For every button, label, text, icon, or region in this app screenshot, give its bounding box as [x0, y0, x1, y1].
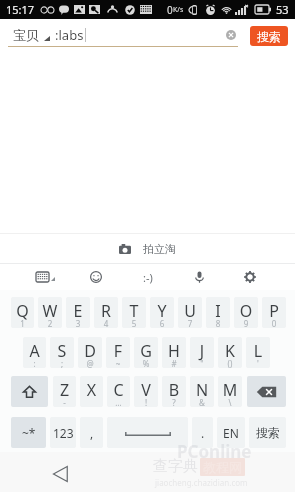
button[interactable]: Keyboard layout [28, 264, 62, 290]
button[interactable]: Space [107, 417, 188, 448]
staticText: 53 [276, 2, 289, 17]
staticText: # [162, 358, 186, 368]
staticText: N [190, 379, 214, 401]
staticText: U [178, 300, 202, 322]
staticText: … [107, 397, 130, 407]
staticText: G [134, 340, 158, 362]
button[interactable]: Settings [233, 264, 267, 290]
button[interactable]: H [162, 337, 186, 368]
staticText: . [201, 425, 205, 441]
staticText: 3 [66, 318, 90, 328]
button[interactable]: Voice input [182, 264, 216, 290]
button[interactable]: 搜索 [249, 417, 286, 448]
button[interactable]: I [206, 297, 230, 328]
button[interactable]: C [107, 376, 130, 407]
staticText: C [107, 379, 130, 401]
button[interactable]: 拍立淘 [0, 234, 295, 263]
staticText: 1 [11, 318, 34, 328]
staticText: O [234, 300, 258, 322]
staticText: % [134, 358, 158, 368]
button[interactable]: T [122, 297, 146, 328]
button[interactable]: V [134, 376, 158, 407]
button[interactable]: EN [217, 417, 245, 448]
button[interactable]: D [78, 337, 102, 368]
button[interactable]: , [80, 417, 103, 448]
button[interactable]: Emoticon [131, 264, 165, 290]
button[interactable]: Y [150, 297, 174, 328]
button[interactable]: 123 [50, 417, 76, 448]
button[interactable]: Q [11, 297, 34, 328]
staticText: X [80, 379, 103, 401]
button[interactable]: Emoji [79, 264, 113, 290]
button[interactable]: Shift [11, 376, 48, 407]
button[interactable]: M [218, 376, 242, 407]
staticText: 拍立淘 [143, 242, 176, 256]
staticText: ~ [106, 358, 130, 368]
button[interactable]: W [38, 297, 62, 328]
staticText: D [78, 340, 102, 362]
staticText: ~* [22, 425, 36, 441]
button[interactable]: P [262, 297, 286, 328]
staticText: ' [246, 358, 270, 368]
button[interactable]: E [66, 297, 90, 328]
staticText: \ [218, 397, 242, 407]
button[interactable]: . [192, 417, 213, 448]
button[interactable]: O [234, 297, 258, 328]
staticText: :labs [55, 26, 84, 44]
staticText: PConline [177, 440, 252, 463]
staticText: ? [162, 397, 186, 407]
staticText: 查字典 [153, 457, 198, 476]
button[interactable]: Clear text [226, 30, 236, 40]
button[interactable]: S [50, 337, 74, 368]
staticText: 搜索 [257, 29, 281, 44]
staticText: 0 [167, 3, 173, 17]
staticText: Y [150, 300, 174, 322]
staticText: 搜索 [256, 425, 280, 440]
staticText: & [190, 397, 214, 407]
staticText: M [218, 379, 242, 401]
staticText: E [66, 300, 90, 322]
button[interactable]: 宝贝 [8, 23, 238, 47]
staticText: A [23, 340, 46, 362]
staticText: I [206, 300, 230, 322]
staticText: 7 [178, 318, 202, 328]
button[interactable]: 搜索 [250, 26, 288, 46]
staticText: 0 [262, 318, 286, 328]
staticText: T [122, 300, 146, 322]
button[interactable]: G [134, 337, 158, 368]
staticText: J [190, 340, 214, 362]
staticText: 4 [94, 318, 118, 328]
staticText: V [134, 379, 158, 401]
staticText: L [246, 340, 270, 362]
button[interactable]: ~* [11, 417, 46, 448]
button[interactable]: A [23, 337, 46, 368]
staticText: ; [50, 358, 74, 368]
staticText: P [262, 300, 286, 322]
staticText: Q [11, 300, 34, 322]
staticText: 8 [206, 318, 230, 328]
staticText: :-) [143, 270, 153, 285]
button[interactable]: J [190, 337, 214, 368]
button[interactable]: Backspace [247, 376, 286, 407]
staticText: 2 [38, 318, 62, 328]
button[interactable]: R [94, 297, 118, 328]
button[interactable]: F [106, 337, 130, 368]
staticText: 123 [53, 425, 74, 441]
staticText: W [38, 300, 62, 322]
button[interactable]: B [162, 376, 186, 407]
staticText: H [162, 340, 186, 362]
staticText: 宝贝 [13, 27, 39, 43]
button[interactable]: Z [53, 376, 76, 407]
button[interactable]: K [218, 337, 242, 368]
button[interactable]: X [80, 376, 103, 407]
staticText: , [90, 425, 94, 441]
staticText: EN [223, 425, 239, 441]
staticText: @ [78, 358, 102, 368]
button[interactable]: Back [42, 455, 79, 492]
button[interactable]: U [178, 297, 202, 328]
button[interactable]: L [246, 337, 270, 368]
button[interactable]: N [190, 376, 214, 407]
staticText: B [162, 379, 186, 401]
